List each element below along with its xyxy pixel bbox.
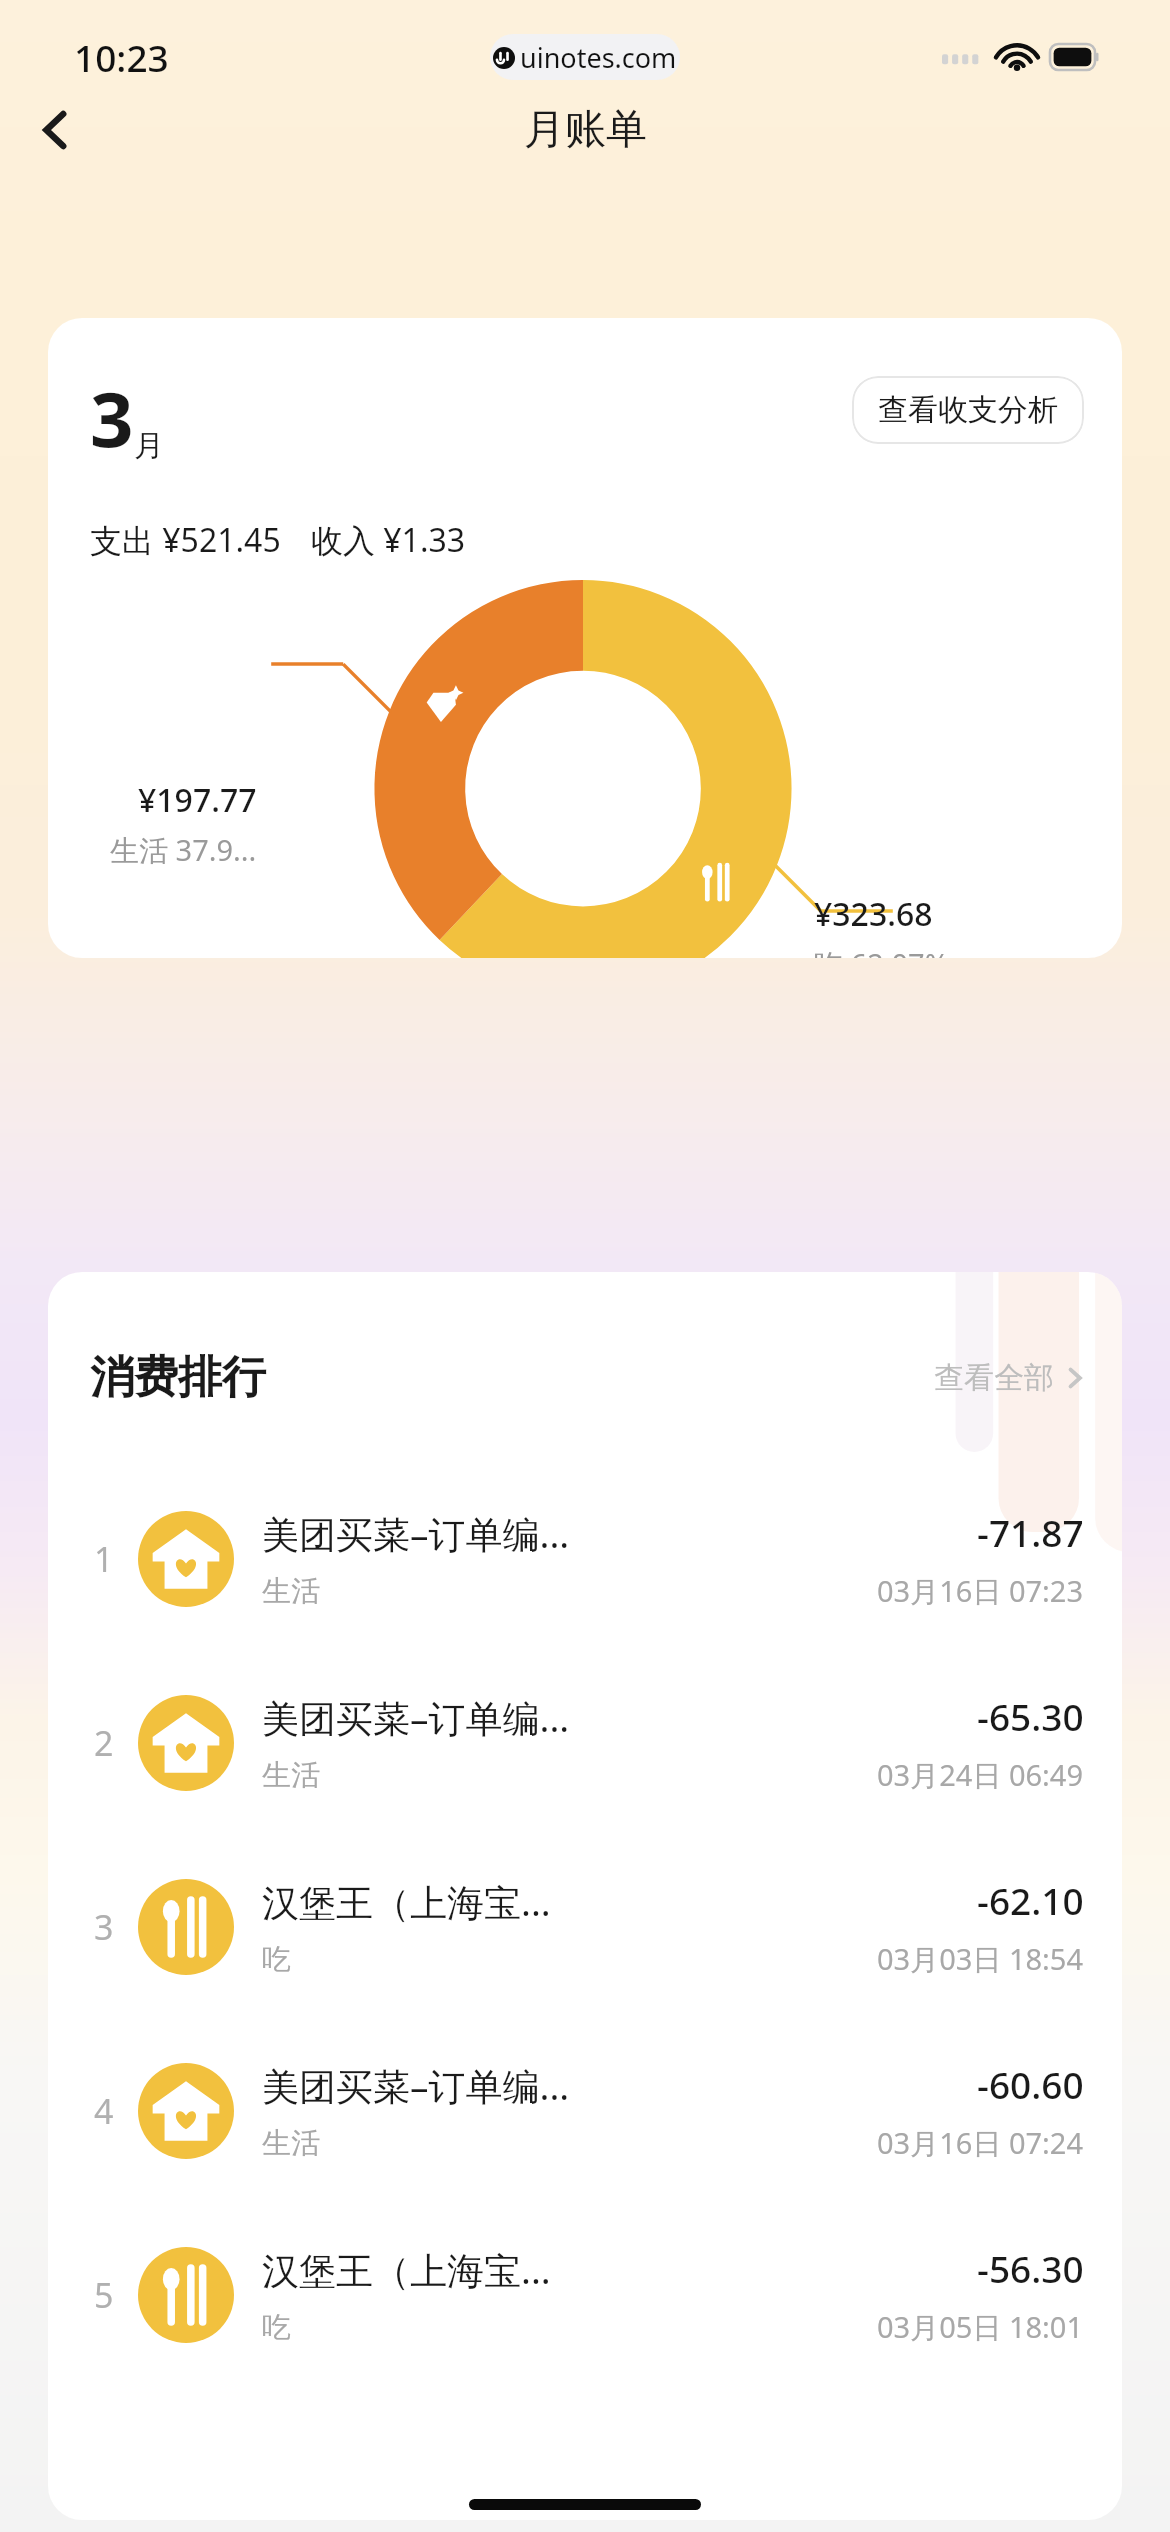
staticText: 美团买菜–订单编...: [262, 1692, 570, 1743]
staticText: 生活: [262, 1573, 320, 1610]
button[interactable]: 2: [48, 1668, 1122, 1818]
staticText: 吃: [262, 1941, 291, 1978]
staticText: 03月05日 18:01: [877, 2307, 1084, 2347]
staticText: 03月24日 06:49: [877, 1755, 1084, 1795]
staticText: 月: [134, 427, 164, 465]
staticText: 5: [94, 2272, 114, 2318]
staticText: 3: [90, 366, 134, 470]
button[interactable]: Back: [18, 92, 94, 168]
staticText: 3: [94, 1904, 114, 1950]
button[interactable]: 查看全部: [934, 1359, 1086, 1397]
staticText: 汉堡王（上海宝...: [262, 1876, 551, 1927]
staticText: -71.87: [977, 1507, 1084, 1557]
staticText: 查看收支分析: [878, 391, 1058, 429]
staticText: 03月03日 18:54: [877, 1939, 1084, 1979]
staticText: 消费排行: [90, 1350, 266, 1405]
staticText: -56.30: [977, 2243, 1084, 2293]
staticText: uinotes.com: [520, 39, 677, 76]
button[interactable]: 4: [48, 2036, 1122, 2186]
staticText: 吃 62.07%: [814, 944, 949, 958]
staticText: 汉堡王（上海宝...: [262, 2244, 551, 2295]
staticText: 生活 37.9...: [110, 830, 257, 870]
staticText: 美团买菜–订单编...: [262, 2060, 570, 2111]
staticText: 生活: [262, 1757, 320, 1794]
staticText: 4: [94, 2088, 114, 2134]
button[interactable]: 1: [48, 1484, 1122, 1634]
staticText: 收入 ¥1.33: [311, 518, 466, 562]
staticText: -62.10: [977, 1875, 1084, 1925]
staticText: 1: [94, 1536, 114, 1582]
staticText: 10:23: [74, 32, 169, 82]
button[interactable]: 3: [48, 1852, 1122, 2002]
staticText: ¥197.77: [138, 778, 257, 822]
staticText: 03月16日 07:23: [877, 1571, 1084, 1611]
button[interactable]: 5: [48, 2220, 1122, 2370]
staticText: -65.30: [977, 1691, 1084, 1741]
button[interactable]: 查看收支分析: [852, 376, 1084, 444]
staticText: -60.60: [977, 2059, 1084, 2109]
staticText: ¥323.68: [814, 892, 933, 936]
staticText: 支出 ¥521.45: [90, 518, 281, 562]
staticText: 吃: [262, 2309, 291, 2346]
staticText: 美团买菜–订单编...: [262, 1508, 570, 1559]
staticText: 月账单: [524, 104, 647, 156]
staticText: 生活: [262, 2125, 320, 2162]
staticText: 03月16日 07:24: [877, 2123, 1084, 2163]
staticText: 2: [94, 1720, 114, 1766]
staticText: 查看全部: [934, 1359, 1054, 1397]
